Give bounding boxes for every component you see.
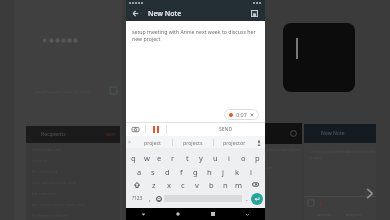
button[interactable]: b [204,178,218,191]
staticText: w [144,153,150,163]
button[interactable]: Pause recording [150,123,162,135]
button[interactable]: z [146,178,161,191]
button[interactable]: g [188,165,202,178]
button[interactable]: p [250,151,264,164]
staticText: e [157,153,162,163]
button[interactable]: project [133,136,172,148]
button[interactable]: t [180,151,194,164]
button[interactable]: Shift [127,178,146,191]
staticText: New Note [148,9,182,19]
button[interactable]: Recents [195,208,230,220]
button[interactable]: q [127,151,140,164]
button[interactable]: SEND [215,124,237,135]
staticText: b [209,180,214,190]
button[interactable]: Save note [248,7,261,20]
button[interactable]: y [194,151,208,164]
button[interactable]: ?123 [128,192,146,205]
staticText: > [128,139,131,146]
button[interactable]: Back [129,7,142,20]
button[interactable]: l [244,165,258,178]
button[interactable]: x [161,178,176,191]
button[interactable]: f [174,165,188,178]
staticText: p [255,153,260,163]
button[interactable]: Enter [251,193,263,205]
staticText: ?123 [132,195,143,202]
staticText: l [250,167,252,177]
button[interactable]: h [202,165,216,178]
button[interactable]: Home [160,208,195,220]
staticText: Recipients [41,131,66,138]
staticText: i [228,153,230,163]
staticText: g [193,167,198,177]
button[interactable]: u [208,151,222,164]
staticText: q [131,153,136,163]
button[interactable]: More options [230,208,265,220]
staticText: a [137,167,142,177]
button[interactable]: Voice input [254,138,263,147]
button[interactable]: c [176,178,190,191]
staticText: v [195,180,199,190]
staticText: s [151,167,155,177]
staticText: . [246,194,248,203]
staticText: x [167,180,171,190]
button[interactable]: . [242,192,251,205]
button[interactable]: , [146,192,154,205]
staticText: projects [346,212,362,217]
button[interactable]: projector [214,136,254,148]
button[interactable]: setup meeting with Annie next week to di… [126,21,265,107]
button[interactable]: k [230,165,244,178]
button[interactable]: v [190,178,204,191]
button[interactable]: Next screenshot [358,182,380,204]
button[interactable]: m [232,178,246,191]
staticText: r [171,153,175,163]
button[interactable]: s [146,165,160,178]
staticText: y [199,153,203,163]
button[interactable]: e [153,151,166,164]
button[interactable]: projects [173,136,213,148]
staticText: t [186,153,189,163]
staticText: m [235,180,243,190]
staticText: projects [183,139,203,146]
button[interactable]: Backspace [246,178,264,191]
staticText: projector [223,139,246,146]
button[interactable]: a [133,165,146,178]
staticText: SEND [219,126,233,133]
staticText: j [222,167,224,177]
staticText: z [152,180,156,190]
staticText: d [165,167,170,177]
staticText: , [149,194,151,203]
button[interactable]: Add photo [129,123,141,135]
staticText: project [144,139,161,146]
button[interactable]: j [216,165,230,178]
button[interactable]: r [166,151,180,164]
staticText: NEXT [106,132,116,137]
staticText: 0:07 [236,111,247,118]
button[interactable]: o [236,151,250,164]
staticText: h [207,167,212,177]
staticText: u [213,153,218,163]
staticText: New Note [321,130,345,137]
button[interactable]: d [160,165,174,178]
staticText: f [180,167,183,177]
button[interactable]: Emoji [154,192,164,205]
staticText: project [318,212,332,217]
button[interactable]: n [218,178,232,191]
button[interactable]: w [140,151,153,164]
staticText: setup meeting with Annie next week to di… [132,28,257,43]
button[interactable]: 0:07 [229,111,254,118]
staticText: o [241,153,246,163]
staticText: k [235,167,240,177]
button[interactable]: i [222,151,236,164]
button[interactable]: Hide keyboard [126,208,160,220]
staticText: c [181,180,185,190]
